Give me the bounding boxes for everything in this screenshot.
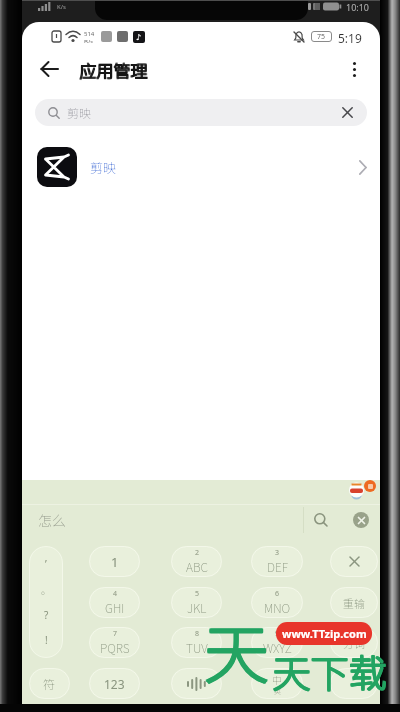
button[interactable] xyxy=(349,58,360,81)
staticText: ’ xyxy=(45,557,47,571)
button[interactable]: 符 xyxy=(29,668,70,699)
staticText: 剪映 xyxy=(67,104,92,121)
button[interactable] xyxy=(330,546,378,577)
button[interactable] xyxy=(171,668,222,699)
staticText: 5:19 xyxy=(338,30,362,43)
staticText: ? xyxy=(44,608,49,622)
staticText: 天 xyxy=(205,604,269,697)
staticText: 天下载 xyxy=(273,643,388,698)
button[interactable]: ’ xyxy=(29,546,63,658)
staticText: ♪ xyxy=(136,33,142,42)
staticText: 天 xyxy=(204,604,268,697)
staticText: 天下载 xyxy=(273,644,388,699)
staticText: 9 xyxy=(275,629,280,639)
staticText: 514 xyxy=(84,30,95,38)
staticText: www.TTzip.com xyxy=(282,626,367,641)
staticText: PQRS xyxy=(100,639,130,656)
staticText: 应用管理 xyxy=(79,58,147,83)
staticText: 重输 xyxy=(343,595,365,611)
button[interactable]: 6 xyxy=(251,587,303,618)
staticText: 5 xyxy=(195,589,200,599)
staticText: 10:10 xyxy=(346,1,370,13)
staticText: TUV xyxy=(186,639,208,656)
staticText: 英 xyxy=(274,686,281,696)
staticText: 怎么 xyxy=(38,510,66,530)
button[interactable]: 5 xyxy=(171,587,222,618)
staticText: ABC xyxy=(186,558,208,575)
button[interactable]: 分词 xyxy=(330,627,378,658)
staticText: 天 xyxy=(205,603,269,696)
button[interactable]: 4 xyxy=(89,587,140,618)
button[interactable]: 9 xyxy=(251,627,303,658)
staticText: 符 xyxy=(43,675,56,692)
staticText: DEF xyxy=(267,558,288,575)
button[interactable]: 剪映 xyxy=(37,145,367,189)
button[interactable]: 1 xyxy=(89,546,140,577)
button[interactable]: 7 xyxy=(89,627,140,658)
staticText: WXYZ xyxy=(263,639,292,656)
button[interactable] xyxy=(41,61,59,77)
button[interactable]: 2 xyxy=(171,546,222,577)
staticText: 4 xyxy=(113,589,118,599)
staticText: 6 xyxy=(275,589,280,599)
staticText: 7 xyxy=(113,629,118,639)
staticText: 2 xyxy=(195,548,200,558)
staticText: 3 xyxy=(275,548,280,558)
staticText: GHI xyxy=(105,599,125,616)
staticText: 。 xyxy=(41,582,51,596)
staticText: B/s xyxy=(84,38,94,43)
button[interactable]: 3 xyxy=(251,546,303,577)
staticText: K/s xyxy=(57,3,66,11)
staticText: 123 xyxy=(104,676,125,692)
staticText: MNO xyxy=(264,599,291,616)
button[interactable]: 中 xyxy=(251,668,303,699)
button[interactable]: 剪映 xyxy=(35,99,367,126)
staticText: 应用管理 xyxy=(80,57,148,82)
staticText: 天下载 xyxy=(272,644,387,699)
button[interactable] xyxy=(330,668,378,699)
button[interactable] xyxy=(353,512,369,528)
button[interactable]: 123 xyxy=(89,668,140,699)
staticText: 8 xyxy=(195,629,200,639)
button[interactable] xyxy=(342,107,353,118)
staticText: 应用管理 xyxy=(79,57,147,82)
button[interactable]: 重输 xyxy=(330,587,378,618)
staticText: ! xyxy=(45,633,48,647)
staticText: 1 xyxy=(111,553,119,571)
staticText: 分词 xyxy=(343,635,365,651)
button[interactable]: 8 xyxy=(171,627,222,658)
staticText: 中 xyxy=(272,672,282,686)
staticText: 应用管理 xyxy=(80,58,148,83)
staticText: 天 xyxy=(204,603,268,696)
staticText: 天下载 xyxy=(272,643,387,698)
staticText: 75 xyxy=(317,32,326,42)
staticText: 剪映 xyxy=(90,158,117,177)
button[interactable] xyxy=(314,513,328,527)
staticText: JKL xyxy=(187,599,207,616)
